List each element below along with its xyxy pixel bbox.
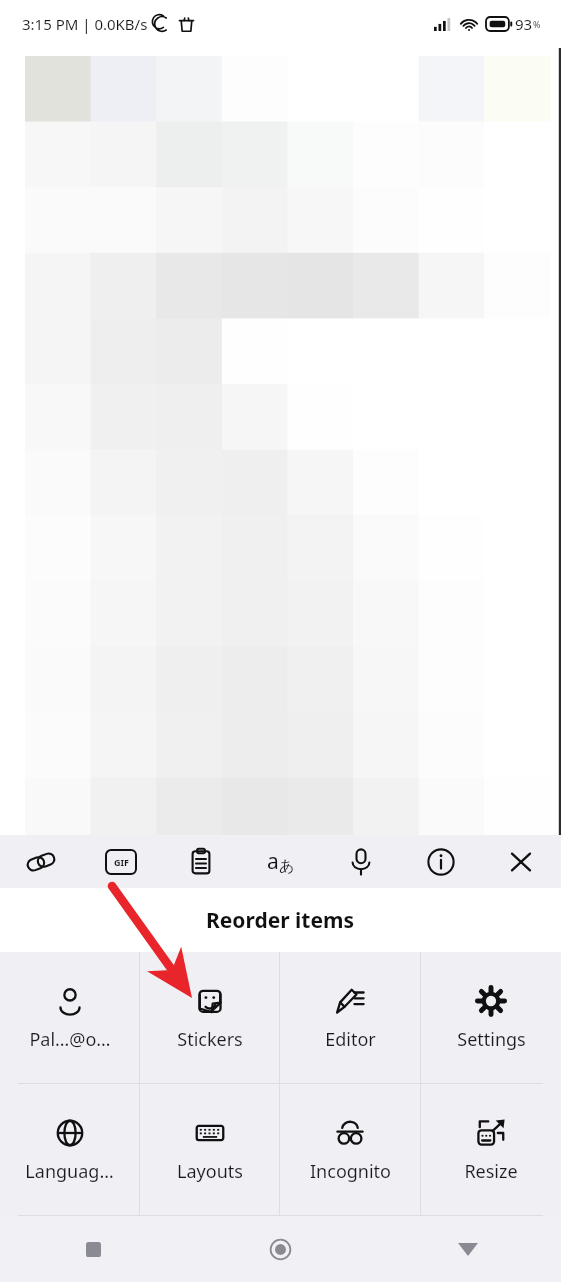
staticText: Editor <box>325 1027 376 1052</box>
staticText: Pal…@o… <box>29 1027 111 1052</box>
staticText: Stickers <box>177 1027 243 1052</box>
staticText: Resize <box>464 1159 518 1184</box>
button[interactable]: Voice input <box>321 835 401 888</box>
staticText: 3:15 PM | 0.0KB/s <box>22 14 148 34</box>
button[interactable]: Stickers <box>140 952 279 1083</box>
button[interactable]: Pal…@o… <box>0 952 139 1083</box>
staticText: % <box>533 18 541 30</box>
staticText: Layouts <box>177 1159 243 1184</box>
button[interactable]: Editor <box>280 952 420 1083</box>
staticText: Reorder items <box>206 906 355 935</box>
staticText: a <box>267 847 279 876</box>
staticText: Settings <box>457 1027 526 1052</box>
staticText: 93 <box>515 14 533 34</box>
button[interactable]: Incognito <box>280 1084 420 1215</box>
button[interactable]: Clipboard <box>161 835 241 888</box>
button[interactable]: Recents <box>0 1216 187 1282</box>
button[interactable]: Translate <box>241 835 321 888</box>
button[interactable]: Close <box>481 835 561 888</box>
staticText: GIF <box>114 856 129 868</box>
staticText: Languag… <box>25 1159 114 1184</box>
staticText: あ <box>279 857 295 876</box>
button[interactable]: Info <box>401 835 481 888</box>
button[interactable]: Resize <box>421 1084 561 1215</box>
button[interactable]: GIF <box>81 835 161 888</box>
button[interactable]: Languag… <box>0 1084 139 1215</box>
button[interactable]: Back <box>374 1216 561 1282</box>
button[interactable]: Settings <box>421 952 561 1083</box>
button[interactable]: Home <box>187 1216 374 1282</box>
staticText: Incognito <box>310 1159 391 1184</box>
button[interactable]: Clipboard tools <box>0 835 81 888</box>
button[interactable]: Layouts <box>140 1084 279 1215</box>
